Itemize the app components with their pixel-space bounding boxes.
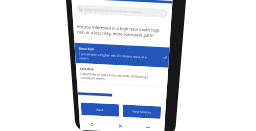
staticText: Enter symbol to find relevant screens [48, 71, 256, 89]
button[interactable]: Enter symbol to find relevant screens [16, 63, 256, 96]
